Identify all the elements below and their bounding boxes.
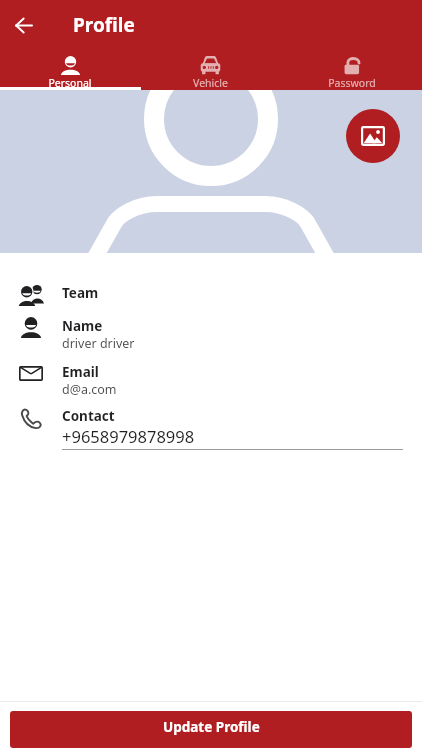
button[interactable]: Team — [0, 284, 422, 317]
staticText: Team — [62, 284, 99, 302]
staticText: +9658979878998 — [62, 425, 195, 447]
staticText: Update Profile — [163, 718, 260, 736]
button[interactable]: Email — [0, 363, 422, 407]
button[interactable]: Vehicle — [140, 50, 281, 90]
staticText: Password — [328, 76, 376, 90]
staticText: Personal — [48, 76, 92, 90]
button[interactable]: Name — [0, 317, 422, 363]
staticText: Email — [62, 363, 99, 381]
staticText: Profile — [73, 12, 135, 38]
button[interactable]: Personal — [0, 50, 140, 90]
staticText: driver driver — [62, 335, 135, 352]
staticText: Name — [62, 317, 103, 335]
staticText: d@a.com — [62, 381, 117, 398]
staticText: Contact — [62, 407, 115, 425]
staticText: Vehicle — [193, 76, 228, 90]
button[interactable]: Back — [0, 1, 48, 49]
button[interactable]: Update Profile — [10, 711, 412, 748]
button[interactable]: Change profile photo — [346, 109, 400, 163]
button[interactable]: Password — [281, 50, 422, 90]
